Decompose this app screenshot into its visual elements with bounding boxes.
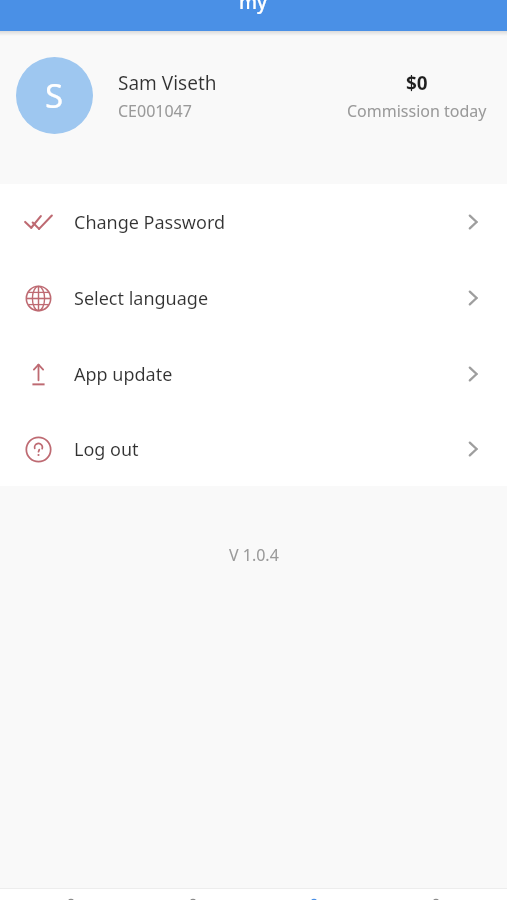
staticText: Commission today bbox=[347, 100, 487, 122]
staticText: App update bbox=[74, 362, 173, 387]
staticText: Select language bbox=[74, 286, 209, 311]
staticText: my bbox=[239, 0, 268, 15]
staticText: CE001047 bbox=[118, 100, 192, 122]
button[interactable]: More bbox=[386, 888, 486, 900]
staticText: S bbox=[45, 73, 64, 118]
button[interactable]: Orders bbox=[143, 888, 243, 900]
button[interactable]: Home bbox=[21, 888, 121, 900]
staticText: V 1.0.4 bbox=[229, 544, 279, 566]
button[interactable]: App update bbox=[0, 336, 507, 412]
button[interactable]: Select language bbox=[0, 260, 507, 336]
staticText: Change Password bbox=[74, 210, 226, 235]
button[interactable]: Log out bbox=[0, 412, 507, 486]
staticText: $0 bbox=[406, 70, 428, 96]
staticText: Log out bbox=[74, 437, 139, 462]
button[interactable]: My bbox=[264, 888, 364, 900]
staticText: Sam Viseth bbox=[118, 70, 217, 96]
button[interactable]: Change Password bbox=[0, 184, 507, 260]
